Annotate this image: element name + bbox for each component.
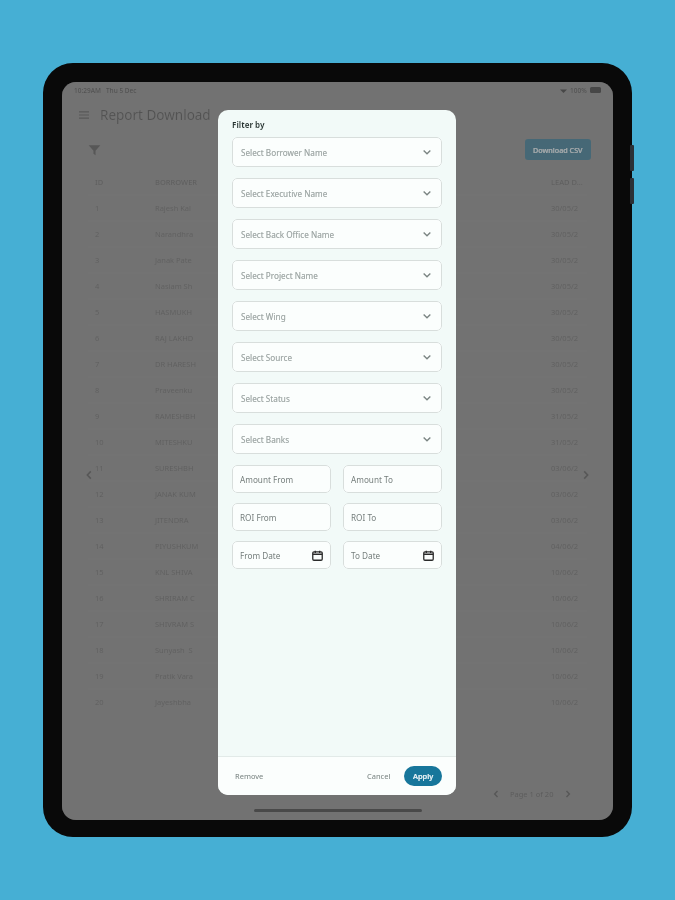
- button[interactable]: Select Borrower Name: [232, 137, 442, 167]
- staticText: Remove: [235, 771, 264, 781]
- button[interactable]: Select Executive Name: [232, 178, 442, 208]
- staticText: Select Project Name: [241, 270, 318, 281]
- staticText: Sunyash S: [155, 645, 355, 655]
- button[interactable]: Select Project Name: [232, 260, 442, 290]
- staticText: Jayeshbha: [155, 697, 355, 707]
- staticText: Cancel: [367, 771, 391, 781]
- staticText: 100%: [570, 86, 587, 95]
- staticText: Janak Pate: [155, 255, 355, 265]
- button[interactable]: Remove: [232, 767, 267, 785]
- staticText: DR HARESH: [155, 359, 355, 369]
- button[interactable]: ROI To: [343, 503, 442, 531]
- staticText: 10/06/2: [551, 593, 613, 603]
- staticText: Praveenku: [155, 385, 355, 395]
- staticText: 30/05/2: [551, 203, 613, 213]
- staticText: 31/05/2: [551, 437, 613, 447]
- button[interactable]: Menu: [76, 107, 92, 123]
- staticText: 03/06/2: [551, 489, 613, 499]
- button[interactable]: Next page: [559, 785, 577, 803]
- button[interactable]: From Date: [232, 541, 331, 569]
- button[interactable]: Select Wing: [232, 301, 442, 331]
- staticText: SURESHBH: [155, 463, 355, 473]
- button[interactable]: Next column: [575, 464, 597, 486]
- other: Pick date: [312, 550, 323, 561]
- staticText: 10/06/2: [551, 567, 613, 577]
- staticText: Narandhra: [155, 229, 355, 239]
- staticText: 30/05/2: [551, 255, 613, 265]
- staticText: SHIVRAM S: [155, 619, 355, 629]
- button[interactable]: Filter: [84, 139, 104, 159]
- staticText: Select Status: [241, 393, 290, 404]
- staticText: Select Borrower Name: [241, 147, 328, 158]
- button[interactable]: ROI From: [232, 503, 331, 531]
- staticText: PIYUSHKUM: [155, 541, 355, 551]
- staticText: Select Wing: [241, 311, 286, 322]
- staticText: 10/06/2: [551, 645, 613, 655]
- staticText: KNL SHIVA: [155, 567, 355, 577]
- button[interactable]: Previous column: [78, 464, 100, 486]
- button[interactable]: Download CSV: [525, 139, 591, 160]
- button[interactable]: Amount To: [343, 465, 442, 493]
- staticText: Apply: [413, 771, 434, 781]
- staticText: JITENDRA: [155, 515, 355, 525]
- staticText: Rajesh Kal: [155, 203, 355, 213]
- staticText: To Date: [351, 550, 381, 561]
- staticText: ROI To: [351, 512, 377, 523]
- staticText: Select Source: [241, 352, 293, 363]
- staticText: HASMUKH: [155, 307, 355, 317]
- staticText: 30/05/2: [551, 333, 613, 343]
- staticText: MITESHKU: [155, 437, 355, 447]
- staticText: 31/05/2: [551, 411, 613, 421]
- staticText: From Date: [240, 550, 281, 561]
- button[interactable]: Cancel: [362, 767, 396, 785]
- staticText: Select Executive Name: [241, 188, 328, 199]
- staticText: ROI From: [240, 512, 277, 523]
- staticText: 10/06/2: [551, 619, 613, 629]
- staticText: 10/06/2: [551, 697, 613, 707]
- staticText: 04/06/2: [551, 541, 613, 551]
- staticText: 30/05/2: [551, 229, 613, 239]
- staticText: 03/06/2: [551, 515, 613, 525]
- staticText: 30/05/2: [551, 307, 613, 317]
- staticText: BORROWER: [155, 177, 355, 187]
- staticText: RAMESHBH: [155, 411, 355, 421]
- staticText: 03/06/2: [551, 463, 613, 473]
- button[interactable]: Amount From: [232, 465, 331, 493]
- button[interactable]: Select Back Office Name: [232, 219, 442, 249]
- staticText: Amount To: [351, 474, 393, 485]
- staticText: 30/05/2: [551, 281, 613, 291]
- staticText: 30/05/2: [551, 359, 613, 369]
- button[interactable]: Apply: [404, 766, 442, 786]
- staticText: Select Banks: [241, 434, 290, 445]
- button[interactable]: Select Status: [232, 383, 442, 413]
- staticText: Pratik Vara: [155, 671, 355, 681]
- staticText: 30/05/2: [551, 385, 613, 395]
- staticText: Select Back Office Name: [241, 229, 335, 240]
- button[interactable]: To Date: [343, 541, 442, 569]
- staticText: RAJ LAKHD: [155, 333, 355, 343]
- button[interactable]: Select Source: [232, 342, 442, 372]
- button[interactable]: Previous page: [487, 785, 505, 803]
- button[interactable]: Select Banks: [232, 424, 442, 454]
- staticText: Download CSV: [533, 145, 583, 155]
